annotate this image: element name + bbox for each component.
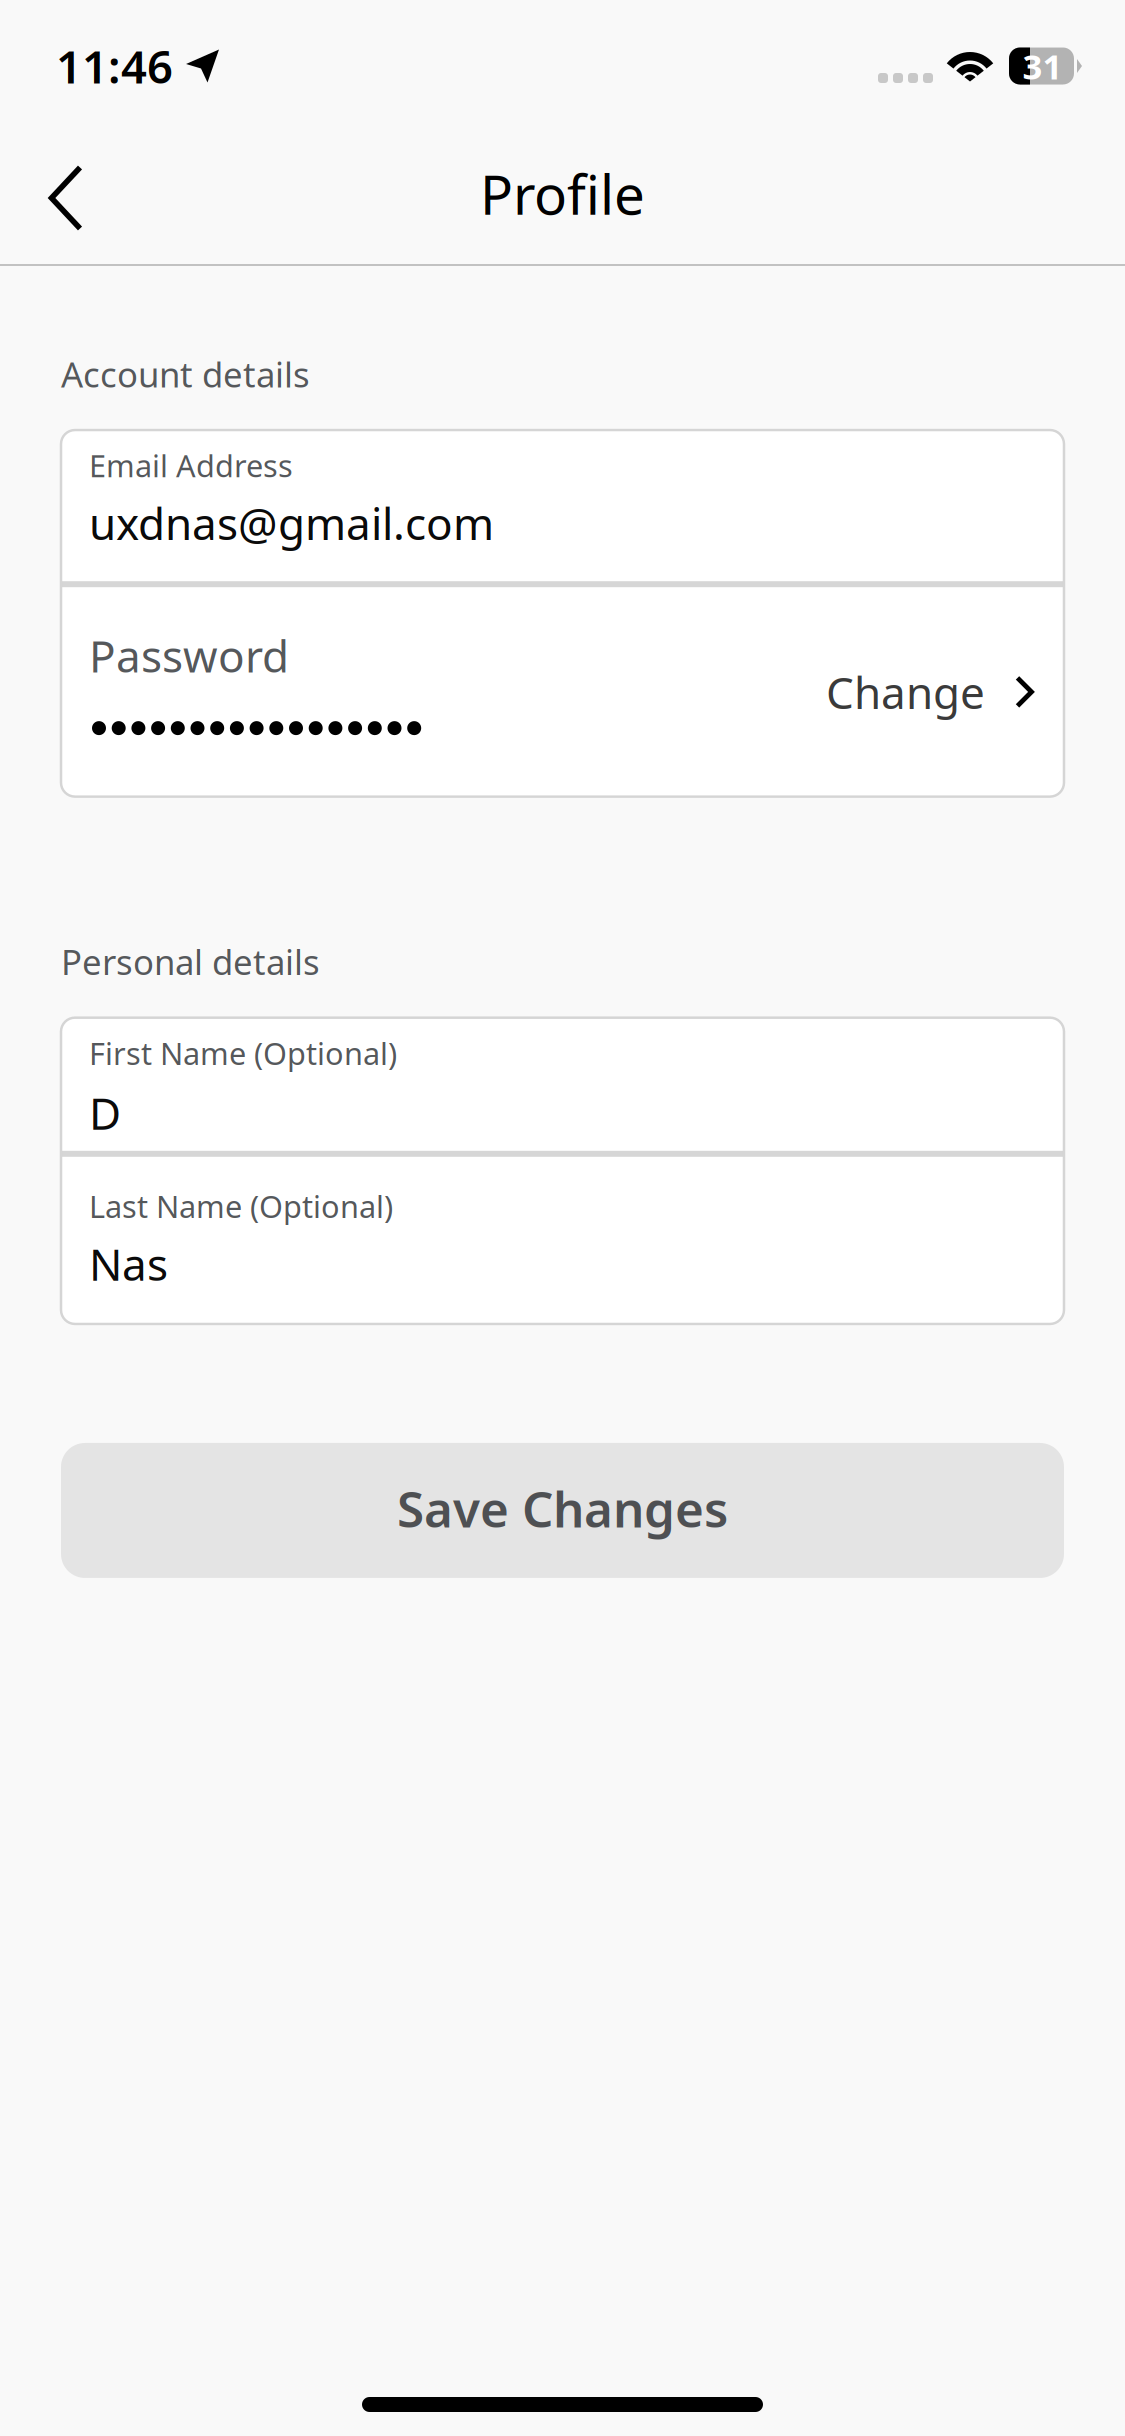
staticText: Save Changes [397,1476,728,1541]
button[interactable]: Change [812,637,1048,747]
staticText: Last Name (Optional) [89,1186,393,1226]
staticText: Personal details [61,939,320,985]
staticText: D [89,1083,121,1142]
button[interactable]: Back [18,142,114,254]
staticText: 11:46 [56,36,173,96]
staticText: First Name (Optional) [89,1033,397,1073]
button[interactable]: First Name (Optional) [61,1018,1064,1151]
staticText: Password [89,626,289,685]
button[interactable]: Save Changes [61,1443,1064,1578]
staticText: Change [826,663,985,721]
staticText: Profile [480,157,645,230]
staticText: uxdnas@gmail.com [89,494,494,552]
button[interactable]: Email Address [61,430,1064,581]
staticText: Account details [61,351,310,397]
staticText: Email Address [89,445,293,486]
staticText: Nas [89,1234,168,1293]
staticText: 31 [1022,43,1062,89]
button[interactable]: Last Name (Optional) [61,1157,1064,1324]
